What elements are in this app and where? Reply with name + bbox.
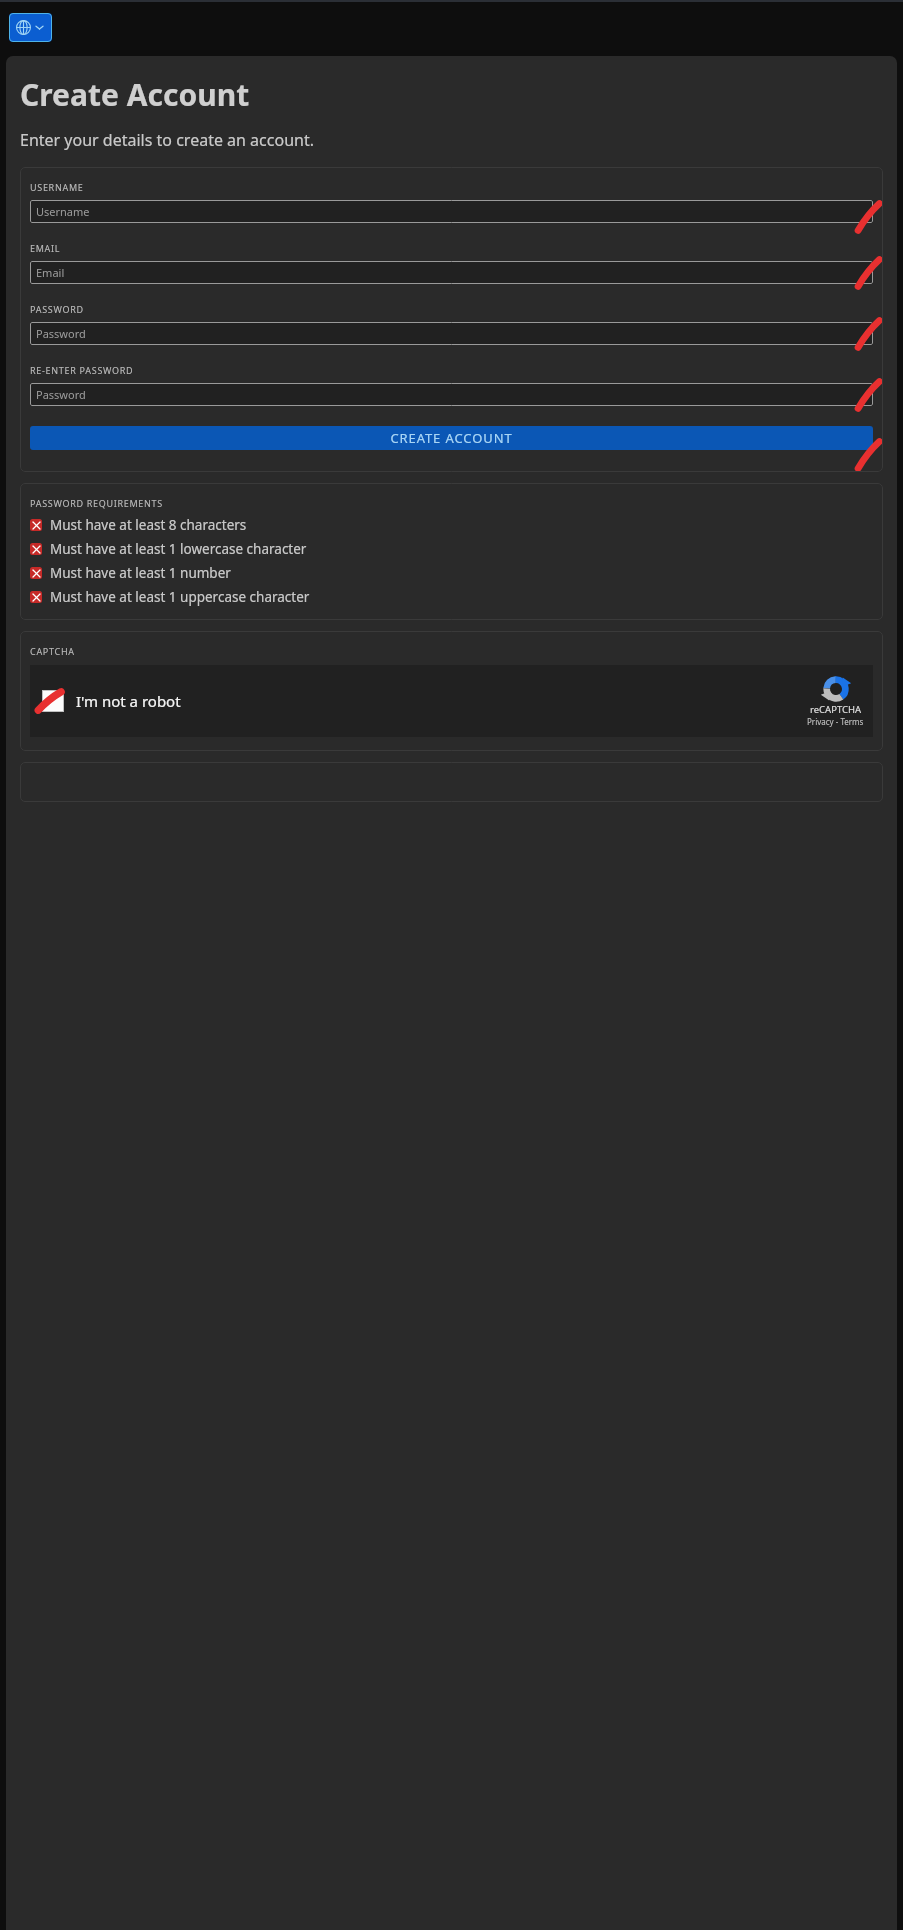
staticText: Must have at least 1 number xyxy=(50,564,231,582)
button[interactable]: Must have at least 8 characters xyxy=(30,516,873,534)
staticText: Password xyxy=(36,326,86,341)
staticText: Email xyxy=(36,265,65,280)
button[interactable]: Password xyxy=(30,322,873,345)
staticText: EMAIL xyxy=(30,242,61,254)
staticText: Enter your details to create an account. xyxy=(20,129,314,151)
staticText: CAPTCHA xyxy=(30,645,75,657)
staticText: Privacy - Terms xyxy=(807,716,864,727)
staticText: Must have at least 8 characters xyxy=(50,516,247,534)
staticText: Username xyxy=(36,204,90,219)
staticText: PASSWORD REQUIREMENTS xyxy=(30,497,163,509)
staticText: Must have at least 1 uppercase character xyxy=(50,588,310,606)
button[interactable]: Must have at least 1 uppercase character xyxy=(30,588,873,606)
staticText: Create Account xyxy=(20,74,250,115)
staticText: USERNAME xyxy=(30,181,84,193)
staticText: I'm not a robot xyxy=(76,691,181,711)
button[interactable]: Username xyxy=(30,200,873,223)
button[interactable]: I'm not a robot xyxy=(30,665,873,737)
staticText: reCAPTCHA xyxy=(810,703,862,716)
staticText: CREATE ACCOUNT xyxy=(390,429,513,447)
button[interactable]: Password xyxy=(30,383,873,406)
button[interactable]: Must have at least 1 lowercase character xyxy=(30,540,873,558)
staticText: Must have at least 1 lowercase character xyxy=(50,540,307,558)
button[interactable]: Email xyxy=(30,261,873,284)
button[interactable]: Select language xyxy=(9,13,52,42)
button[interactable]: CREATE ACCOUNT xyxy=(30,426,873,450)
button[interactable]: Must have at least 1 number xyxy=(30,564,873,582)
staticText: Password xyxy=(36,387,86,402)
staticText: PASSWORD xyxy=(30,303,84,315)
staticText: RE-ENTER PASSWORD xyxy=(30,364,134,376)
